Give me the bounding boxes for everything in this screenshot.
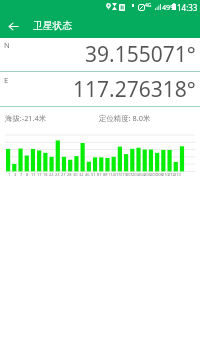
staticText: 201 (126, 172, 133, 177)
staticText: 206 (144, 172, 151, 177)
staticText: 22 (49, 172, 54, 177)
staticText: 208 (156, 172, 163, 177)
staticText: 203 (132, 172, 139, 177)
staticText: 32 (79, 172, 84, 177)
staticText: 117.276318° (73, 75, 196, 104)
staticText: 18 (43, 172, 48, 177)
staticText: 3 (14, 172, 17, 177)
staticText: 17 (37, 172, 42, 177)
staticText: 46 (85, 172, 90, 177)
staticText: 119 (120, 172, 127, 177)
staticText: 51 (91, 172, 96, 177)
staticText: 213 (174, 172, 181, 177)
staticText: 27 (61, 172, 66, 177)
staticText: 23 (55, 172, 60, 177)
staticText: 14:33 (177, 2, 198, 13)
staticText: 30 (73, 172, 78, 177)
button[interactable]: Back (0, 14, 26, 38)
staticText: 207 (150, 172, 157, 177)
staticText: E (4, 75, 9, 85)
staticText: 海拔:-21.4米 (5, 113, 47, 123)
staticText: 39.155071° (85, 40, 196, 69)
staticText: 87 (97, 172, 102, 177)
staticText: 114 (108, 172, 115, 177)
staticText: 204 (138, 172, 145, 177)
staticText: 115 (114, 172, 121, 177)
staticText: 28 (67, 172, 72, 177)
staticText: 4G (145, 2, 152, 9)
button[interactable]: E (0, 72, 200, 106)
staticText: 210 (162, 172, 169, 177)
button[interactable]: N (0, 38, 200, 71)
staticText: 212 (168, 172, 175, 177)
staticText: 11 (31, 172, 36, 177)
staticText: 49% (162, 2, 177, 12)
staticText: 卫星状态 (33, 20, 73, 32)
staticText: 1 (8, 172, 11, 177)
staticText: 88 (103, 172, 108, 177)
staticText: N (4, 40, 10, 50)
staticText: 8 (26, 172, 29, 177)
staticText: 定位精度: 8.0米 (99, 113, 151, 123)
staticText: 7 (20, 172, 23, 177)
